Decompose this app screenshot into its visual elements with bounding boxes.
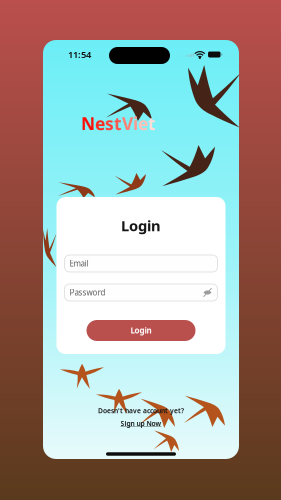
staticText: V — [122, 112, 133, 135]
staticText: t — [114, 112, 122, 135]
staticText: s — [105, 112, 114, 135]
staticText: Password — [69, 287, 105, 298]
staticText: e — [95, 112, 105, 135]
staticText: Email — [69, 258, 88, 269]
staticText: Doesn't have account yet? — [98, 406, 184, 415]
staticText: i — [133, 112, 138, 135]
button[interactable]: Login — [86, 320, 195, 341]
staticText: 11:54 — [68, 48, 91, 61]
staticText: N — [81, 112, 95, 135]
staticText: e — [138, 112, 148, 135]
button[interactable]: Sign up Now — [120, 419, 161, 428]
staticText: Login — [130, 325, 151, 336]
staticText: Login — [121, 216, 161, 235]
staticText: Sign up Now — [120, 419, 161, 428]
staticText: t — [148, 112, 156, 135]
